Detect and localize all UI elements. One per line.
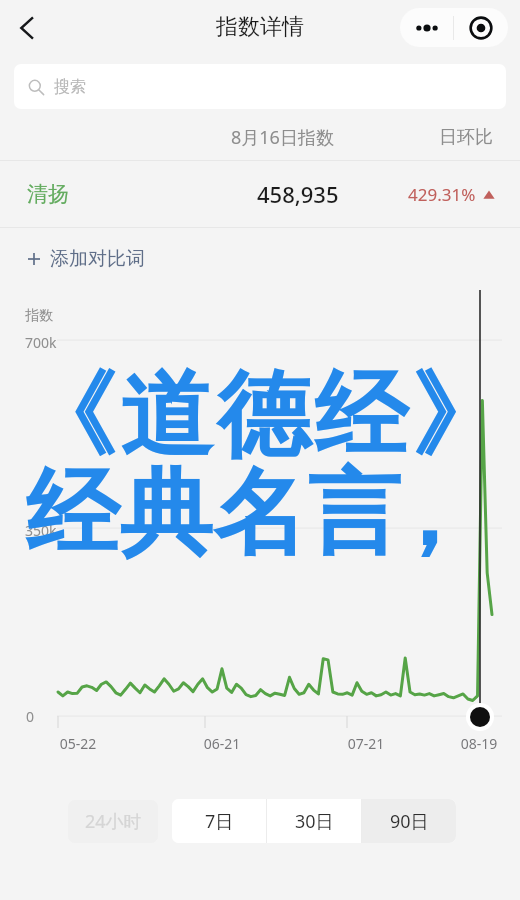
- button[interactable]: 30日: [267, 799, 361, 843]
- button[interactable]: 24小时: [68, 800, 158, 843]
- staticText: 08-19: [439, 734, 519, 753]
- staticText: 05-22: [38, 734, 118, 753]
- staticText: ，: [381, 455, 474, 572]
- staticText: 指数: [25, 307, 53, 325]
- staticText: 07-21: [326, 734, 406, 753]
- button[interactable]: More: [400, 8, 453, 47]
- staticText: 90日: [390, 809, 429, 834]
- staticText: 7日: [205, 809, 234, 834]
- staticText: 日环比: [439, 126, 493, 149]
- button[interactable]: Close: [454, 8, 508, 47]
- staticText: 《道德经》: [21, 357, 506, 474]
- staticText: 429.31%: [408, 183, 476, 206]
- staticText: 30日: [295, 809, 334, 834]
- button[interactable]: 添加对比词: [28, 228, 500, 290]
- button[interactable]: 搜索: [14, 64, 506, 109]
- button[interactable]: 7日: [172, 799, 266, 843]
- staticText: 添加对比词: [50, 247, 145, 271]
- staticText: 清扬: [27, 181, 69, 207]
- staticText: 8月16日指数: [231, 125, 334, 150]
- staticText: 经典名言: [25, 455, 401, 572]
- staticText: 06-21: [182, 734, 262, 753]
- button[interactable]: 清扬: [0, 161, 520, 227]
- staticText: 搜索: [54, 77, 86, 97]
- staticText: 350k: [25, 521, 57, 540]
- button[interactable]: 90日: [362, 799, 456, 843]
- staticText: 0: [26, 707, 35, 726]
- button[interactable]: Back: [5, 6, 49, 50]
- staticText: 458,935: [257, 179, 339, 209]
- staticText: 指数详情: [216, 13, 304, 41]
- staticText: 700k: [25, 333, 57, 352]
- staticText: 24小时: [85, 809, 142, 834]
